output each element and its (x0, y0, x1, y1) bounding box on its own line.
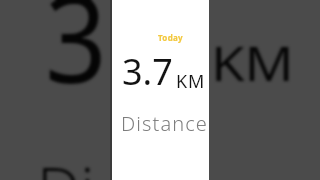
staticText: 3.7 (122, 47, 173, 96)
staticText: 3 (45, 0, 107, 118)
staticText: Distance (121, 110, 208, 137)
staticText: KM (211, 30, 295, 95)
staticText: Di (37, 148, 95, 180)
button[interactable]: Today (112, 0, 209, 180)
staticText: Today (158, 32, 183, 43)
staticText: KM (176, 69, 206, 94)
